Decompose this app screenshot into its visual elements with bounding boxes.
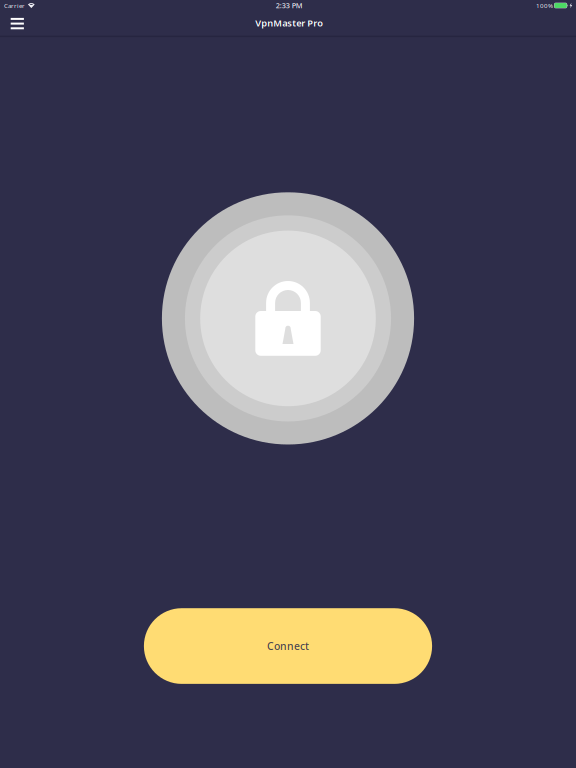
- button[interactable]: Connect: [144, 608, 432, 684]
- button[interactable]: Menu: [0, 11, 33, 35]
- staticText: 2:33 PM: [276, 0, 303, 10]
- staticText: 100%: [536, 1, 553, 10]
- staticText: VpnMaster Pro: [255, 17, 323, 29]
- staticText: Carrier: [4, 1, 25, 10]
- staticText: Connect: [267, 639, 309, 653]
